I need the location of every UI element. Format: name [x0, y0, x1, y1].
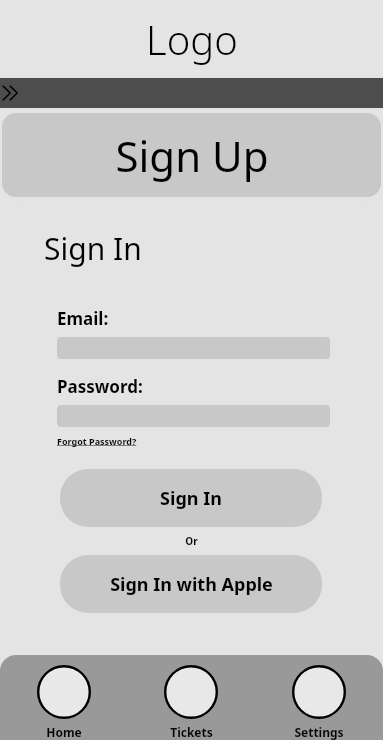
staticText: Logo: [146, 12, 238, 66]
button[interactable]: Sign Up: [2, 113, 381, 197]
button[interactable]: Settings: [255, 655, 383, 740]
button[interactable]: Expand menu: [1, 82, 23, 104]
staticText: Sign In with Apple: [110, 572, 273, 597]
button[interactable]: Tickets: [127, 655, 255, 740]
staticText: Home: [46, 724, 82, 740]
staticText: Settings: [294, 724, 344, 740]
staticText: Sign In: [44, 228, 142, 269]
staticText: Forgot Password?: [57, 435, 137, 447]
button[interactable]: Home: [0, 655, 127, 740]
button[interactable]: Sign In: [60, 469, 322, 527]
staticText: Tickets: [170, 724, 213, 740]
staticText: Or: [185, 534, 198, 548]
staticText: Sign In: [160, 486, 222, 511]
staticText: Sign Up: [115, 127, 269, 184]
staticText: Email:: [57, 307, 109, 330]
staticText: Password:: [57, 375, 143, 398]
button[interactable]: Forgot Password?: [57, 435, 137, 447]
button[interactable]: Sign In with Apple: [60, 555, 322, 613]
